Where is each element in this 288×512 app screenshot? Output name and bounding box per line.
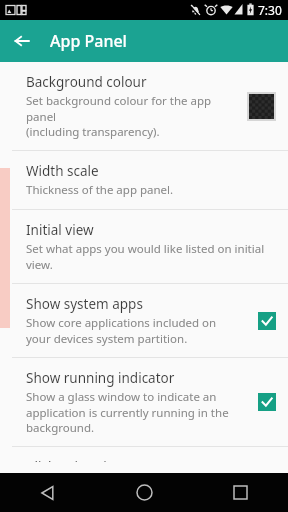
button[interactable]: Back bbox=[8, 27, 36, 55]
button[interactable]: Background colour swatch bbox=[249, 94, 274, 119]
staticText: Width scale bbox=[26, 162, 99, 180]
staticText: App Panel bbox=[50, 30, 127, 52]
staticText: Initial view bbox=[26, 221, 94, 239]
button[interactable]: Click animation bbox=[0, 447, 288, 473]
button[interactable]: Home bbox=[96, 473, 192, 512]
button[interactable]: Back bbox=[0, 473, 96, 512]
button[interactable]: Recent apps bbox=[192, 473, 288, 512]
staticText: 7:30 bbox=[258, 2, 282, 18]
staticText: Show system apps bbox=[26, 295, 143, 313]
staticText: Set what apps you would like listed on i… bbox=[26, 241, 265, 272]
button[interactable]: Width scale bbox=[0, 151, 288, 209]
button[interactable]: Toggle checkbox bbox=[258, 393, 276, 411]
button[interactable]: Initial view bbox=[0, 210, 288, 283]
staticText: Click animation bbox=[26, 458, 124, 462]
staticText: Show running indicator bbox=[26, 369, 175, 387]
button[interactable]: Show system apps bbox=[0, 284, 288, 357]
button[interactable]: Background colour bbox=[0, 62, 288, 150]
staticText: Set background colour for the app panel … bbox=[26, 93, 239, 139]
staticText: Show a glass window to indicate an appli… bbox=[26, 389, 229, 435]
button[interactable]: Show running indicator bbox=[0, 358, 288, 446]
button[interactable]: Toggle checkbox bbox=[258, 312, 276, 330]
staticText: Background colour bbox=[26, 73, 147, 91]
staticText: Thickness of the app panel. bbox=[26, 182, 174, 198]
staticText: Show core applications included on your … bbox=[26, 315, 217, 346]
